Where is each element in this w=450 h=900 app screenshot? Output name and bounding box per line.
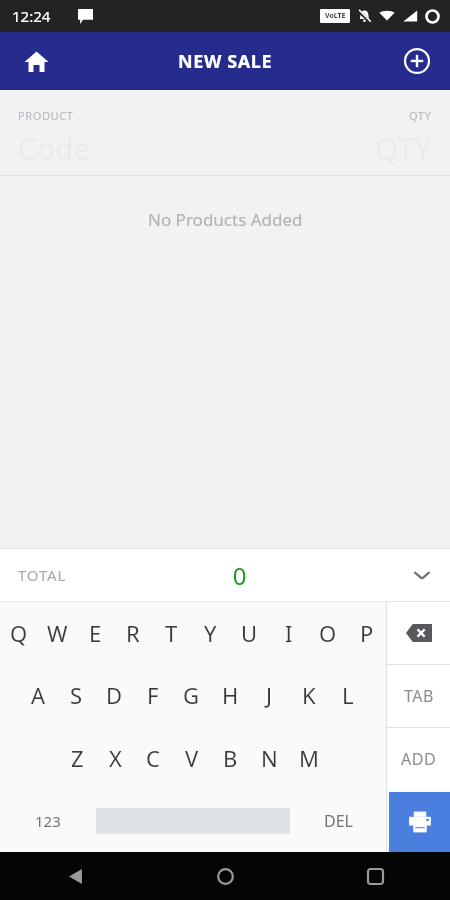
button[interactable]: A (19, 664, 57, 726)
button[interactable]: S (57, 664, 95, 726)
staticText: No Products Added (148, 208, 303, 231)
staticText: M (299, 743, 319, 773)
staticText: O (319, 618, 337, 648)
button[interactable]: M (289, 726, 328, 789)
staticText: U (241, 618, 258, 648)
staticText: J (266, 680, 273, 710)
staticText: 0 (67, 559, 412, 592)
staticText: ADD (401, 748, 437, 770)
button[interactable]: T (152, 602, 191, 664)
staticText: C (146, 743, 160, 773)
staticText: F (147, 680, 159, 710)
staticText: P (360, 618, 374, 648)
button[interactable]: TOTAL (0, 549, 450, 601)
staticText: VoLTE (325, 11, 346, 21)
button[interactable]: B (211, 726, 250, 789)
staticText: Z (71, 743, 84, 773)
staticText: E (89, 618, 102, 648)
staticText: T (165, 618, 178, 648)
button[interactable]: Z (58, 726, 96, 789)
button[interactable]: DEL (290, 789, 386, 852)
staticText: K (302, 680, 316, 710)
button[interactable]: N (250, 726, 289, 789)
staticText: V (185, 743, 199, 773)
staticText: S (70, 680, 83, 710)
button[interactable]: Recents (300, 852, 450, 900)
staticText: X (109, 743, 122, 773)
button[interactable]: G (172, 664, 211, 726)
button[interactable]: Print (389, 792, 450, 852)
staticText: B (223, 743, 238, 773)
staticText: N (261, 743, 278, 773)
staticText: 123 (35, 811, 61, 831)
button[interactable]: Y (191, 602, 230, 664)
other: Expand (412, 565, 432, 585)
button[interactable]: U (230, 602, 269, 664)
button[interactable]: W (38, 602, 76, 664)
staticText: NEW SALE (178, 49, 273, 74)
button[interactable]: O (308, 602, 347, 664)
button[interactable]: ADD (387, 728, 450, 790)
button[interactable]: C (134, 726, 172, 789)
staticText: Q (10, 618, 28, 648)
button[interactable]: E (76, 602, 114, 664)
staticText: A (31, 680, 46, 710)
staticText: G (183, 680, 200, 710)
staticText: 12:24 (12, 6, 51, 26)
button[interactable]: J (250, 664, 289, 726)
staticText: I (285, 618, 293, 648)
staticText: H (222, 680, 239, 710)
button[interactable]: K (289, 664, 328, 726)
button[interactable]: X (96, 726, 134, 789)
staticText: QTY (409, 108, 432, 123)
staticText: W (47, 618, 68, 648)
staticText: TOTAL (18, 565, 67, 585)
button[interactable]: V (172, 726, 211, 789)
button[interactable]: D (95, 664, 133, 726)
button[interactable]: Add (397, 41, 437, 81)
button[interactable]: P (347, 602, 386, 664)
button[interactable]: R (114, 602, 152, 664)
staticText: L (342, 680, 354, 710)
button[interactable]: Back (0, 852, 150, 900)
button[interactable]: TAB (387, 665, 450, 727)
staticText: PRODUCT (18, 108, 74, 123)
button[interactable]: F (133, 664, 172, 726)
button[interactable]: Backspace (387, 602, 450, 664)
button[interactable]: Q (0, 602, 38, 664)
staticText: D (106, 680, 123, 710)
button[interactable]: Home (16, 41, 56, 81)
button[interactable]: L (328, 664, 367, 726)
staticText: TAB (404, 685, 434, 707)
button[interactable]: Home (150, 852, 300, 900)
button[interactable]: Space (96, 803, 290, 838)
staticText: R (126, 618, 140, 648)
staticText: DEL (324, 810, 353, 832)
staticText: Y (204, 618, 217, 648)
button[interactable]: H (211, 664, 250, 726)
button[interactable]: 123 (0, 789, 96, 852)
button[interactable]: I (269, 602, 308, 664)
